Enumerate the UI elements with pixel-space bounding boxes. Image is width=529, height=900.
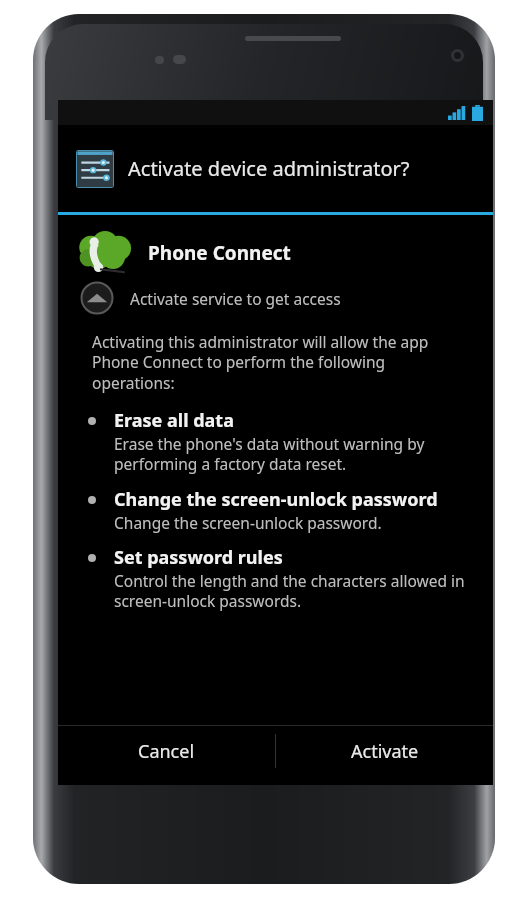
staticText: Erase all data xyxy=(114,408,234,433)
staticText: Change the screen-unlock password xyxy=(114,487,438,512)
button[interactable]: Expand details xyxy=(80,281,493,315)
staticText: Set password rules xyxy=(114,545,283,570)
button[interactable]: Activate xyxy=(276,726,493,776)
staticText: Control the length and the characters al… xyxy=(114,570,469,612)
staticText: Activate xyxy=(351,739,419,764)
button[interactable]: Cancel xyxy=(58,726,275,776)
staticText: Activating this administrator will allow… xyxy=(92,331,467,394)
staticText: Phone Connect xyxy=(148,240,291,266)
staticText: Activate device administrator? xyxy=(128,155,410,182)
staticText: Cancel xyxy=(138,739,195,764)
staticText: Change the screen-unlock password. xyxy=(114,512,382,533)
other: Device administration settings xyxy=(76,150,114,188)
other: Expand details xyxy=(80,281,114,315)
staticText: Erase the phone's data without warning b… xyxy=(114,433,469,475)
staticText: Activate service to get access xyxy=(130,288,341,309)
